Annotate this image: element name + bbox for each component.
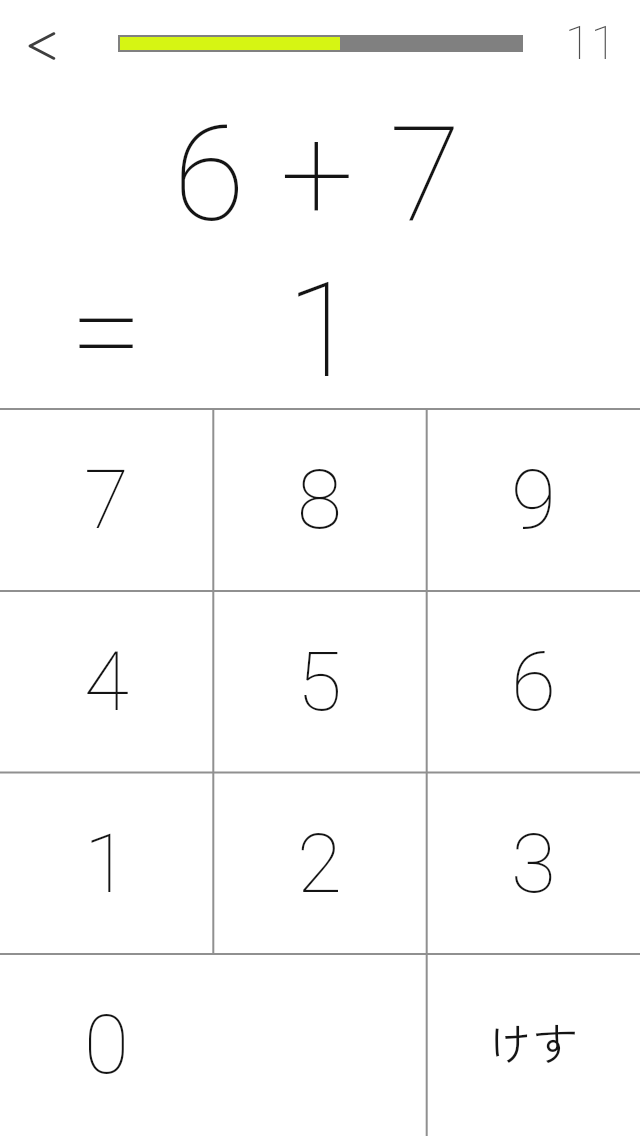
- button[interactable]: 1: [0, 773, 213, 955]
- staticText: 2: [297, 816, 342, 912]
- button[interactable]: 6: [427, 591, 640, 773]
- button[interactable]: けす: [427, 954, 640, 1136]
- button[interactable]: 8: [213, 409, 426, 591]
- staticText: 6: [511, 634, 556, 730]
- staticText: 5: [297, 634, 342, 730]
- staticText: 8: [297, 452, 342, 548]
- staticText: 1: [84, 816, 129, 912]
- staticText: =: [70, 254, 144, 408]
- staticText: 11: [565, 15, 617, 70]
- button[interactable]: 5: [213, 591, 426, 773]
- staticText: 1: [2, 254, 640, 408]
- button[interactable]: [14, 20, 70, 72]
- staticText: 4: [84, 634, 129, 730]
- button[interactable]: 0: [0, 954, 427, 1136]
- staticText: 0: [84, 997, 129, 1093]
- staticText: 7: [84, 452, 129, 548]
- button[interactable]: 7: [0, 409, 213, 591]
- button[interactable]: 9: [427, 409, 640, 591]
- button[interactable]: 4: [0, 591, 213, 773]
- staticText: 3: [511, 816, 556, 912]
- staticText: 9: [511, 452, 556, 548]
- button[interactable]: 2: [213, 773, 426, 955]
- button[interactable]: 3: [427, 773, 640, 955]
- staticText: 6 + 7: [0, 98, 638, 252]
- staticText: けす: [488, 1009, 579, 1074]
